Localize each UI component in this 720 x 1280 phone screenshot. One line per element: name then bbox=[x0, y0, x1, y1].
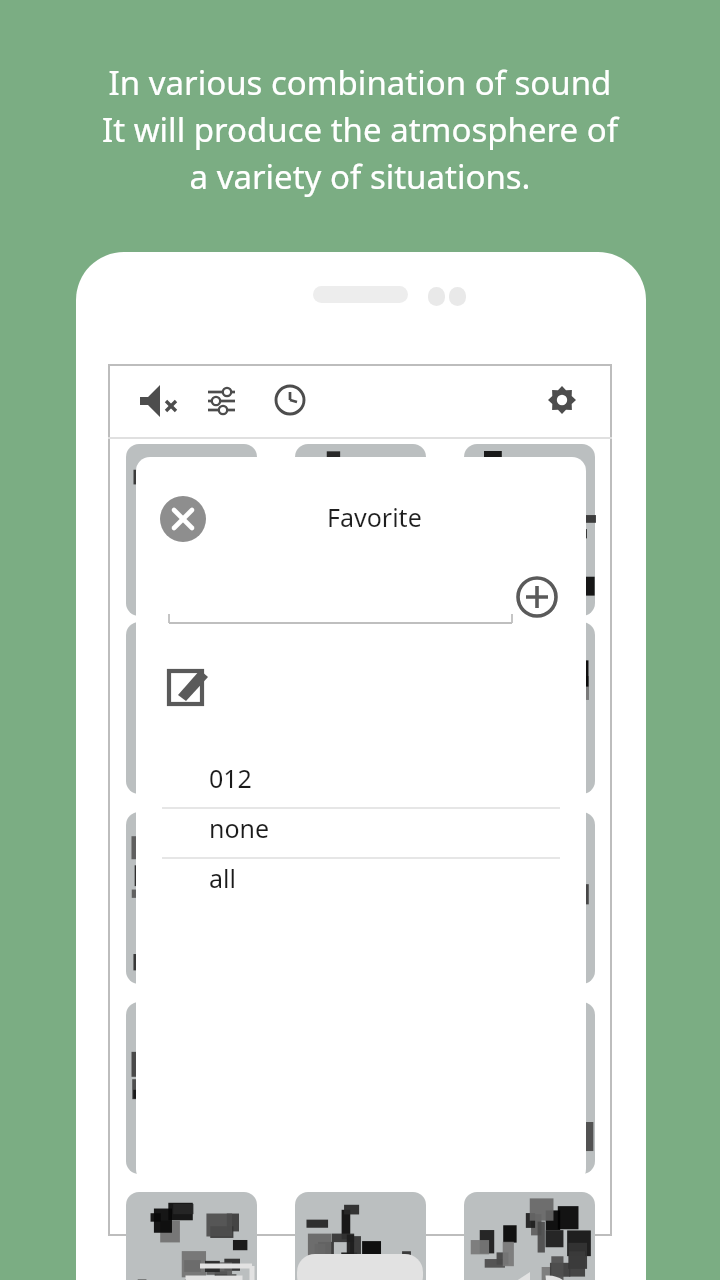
button[interactable]: Home bbox=[297, 1254, 423, 1280]
button[interactable]: Recents bbox=[170, 1248, 240, 1280]
staticText: none bbox=[209, 811, 270, 845]
staticText: In various combination of sound It will … bbox=[30, 60, 690, 215]
staticText: all bbox=[209, 861, 236, 895]
staticText: Favorite bbox=[327, 500, 422, 534]
button[interactable]: Back bbox=[488, 1248, 558, 1280]
staticText: 012 bbox=[209, 761, 252, 795]
